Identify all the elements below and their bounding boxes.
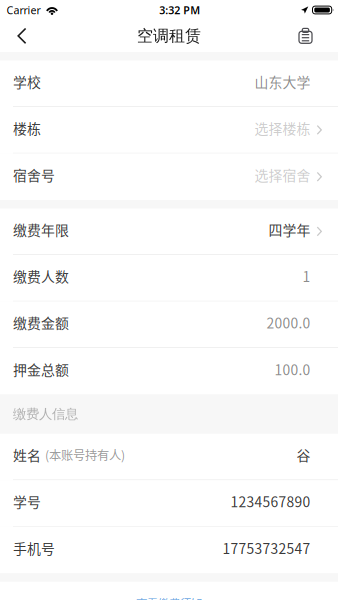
staticText: 山东大学 <box>254 71 310 91</box>
staticText: 宿舍号 <box>13 165 55 185</box>
button[interactable]: Payment records <box>284 20 338 52</box>
staticText: 缴费人数 <box>13 266 69 286</box>
staticText: 姓名 <box>13 445 41 465</box>
staticText: 查看缴费须知 <box>136 595 202 600</box>
staticText: 学号 <box>13 491 41 511</box>
button[interactable]: 缴费人数 <box>0 255 338 301</box>
staticText: 缴费人信息 <box>13 406 78 422</box>
staticText: 100.0 <box>274 359 310 379</box>
button[interactable]: 学号 <box>0 480 338 527</box>
staticText: 选择宿舍 <box>254 165 310 185</box>
staticText: 1 <box>302 266 310 286</box>
button[interactable]: 押金总额 <box>0 348 338 394</box>
staticText: 手机号 <box>13 538 55 558</box>
staticText: 17753732547 <box>222 538 310 558</box>
button[interactable]: 学校 <box>0 60 338 107</box>
staticText: 缴费年限 <box>13 219 69 239</box>
staticText: 3:32 PM <box>159 3 200 17</box>
staticText: Carrier <box>7 3 41 17</box>
button[interactable]: 姓名 <box>0 434 338 480</box>
button[interactable]: 楼栋 <box>0 107 338 153</box>
button[interactable]: 缴费金额 <box>0 301 338 348</box>
staticText: 空调租赁 <box>137 26 201 46</box>
staticText: 楼栋 <box>13 118 41 138</box>
staticText: (本账号持有人) <box>45 446 125 463</box>
staticText: 四学年 <box>268 219 310 239</box>
staticText: 缴费金额 <box>13 312 69 332</box>
button[interactable]: 宿舍号 <box>0 153 338 200</box>
staticText: 选择楼栋 <box>254 118 310 138</box>
button[interactable]: 缴费年限 <box>0 208 338 255</box>
staticText: 2000.0 <box>266 312 310 332</box>
button[interactable]: 查看缴费须知 <box>136 595 202 600</box>
staticText: 谷 <box>296 445 310 465</box>
staticText: 1234567890 <box>230 491 310 511</box>
button[interactable]: 手机号 <box>0 527 338 573</box>
staticText: 学校 <box>13 71 41 91</box>
button[interactable]: Back <box>0 20 41 52</box>
staticText: 押金总额 <box>13 359 69 379</box>
